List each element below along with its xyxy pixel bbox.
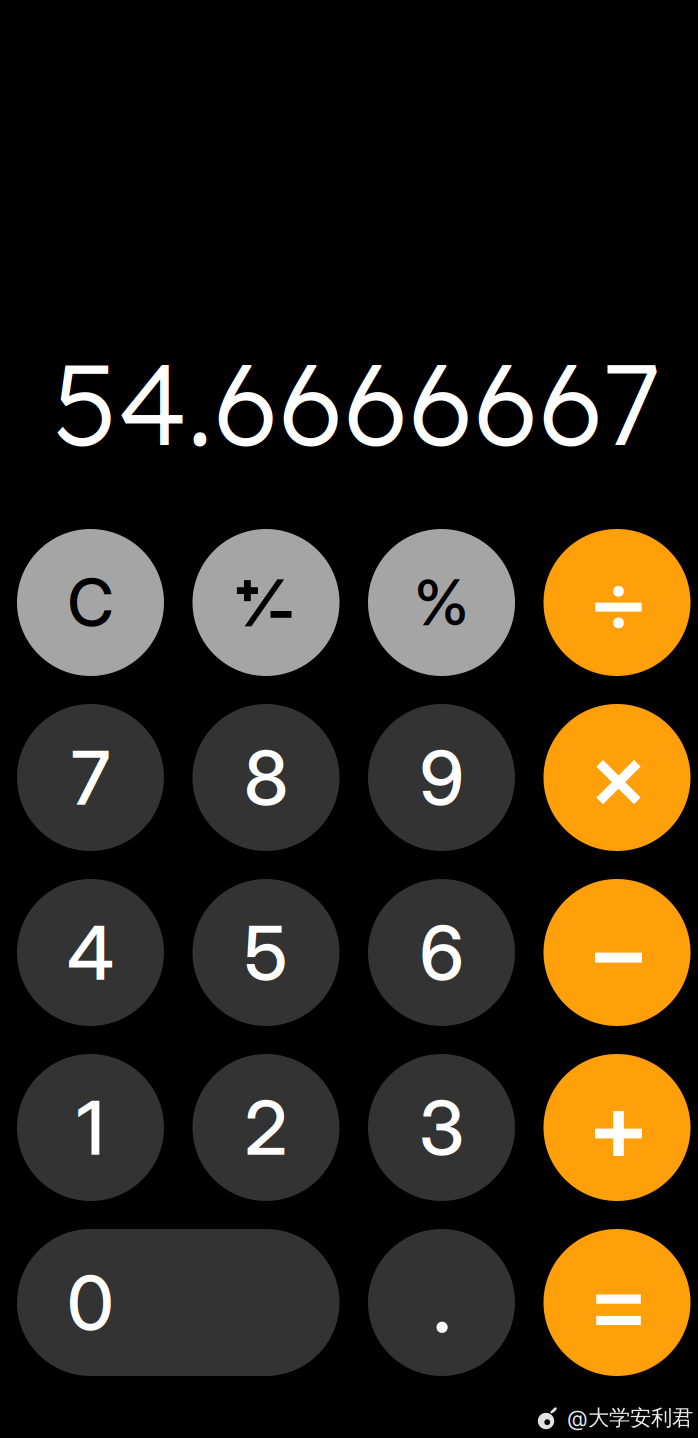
staticText: C: [67, 564, 113, 641]
button[interactable]: Add: [543, 1054, 690, 1201]
button[interactable]: C: [17, 529, 164, 676]
staticText: 54.6666667: [53, 332, 661, 474]
staticText: 0: [67, 1257, 114, 1348]
staticText: 8: [244, 732, 288, 823]
staticText: 7: [71, 732, 110, 823]
button[interactable]: 0: [17, 1229, 339, 1376]
button[interactable]: Toggle sign: [192, 529, 339, 676]
staticText: @大学安利君: [567, 1405, 693, 1431]
staticText: 3: [419, 1082, 464, 1173]
button[interactable]: 1: [17, 1054, 164, 1201]
button[interactable]: 3: [368, 1054, 515, 1201]
staticText: 4: [67, 907, 114, 998]
button[interactable]: Equals: [543, 1229, 690, 1376]
button[interactable]: 9: [368, 704, 515, 851]
button[interactable]: Subtract: [543, 879, 690, 1026]
staticText: 1: [76, 1082, 104, 1173]
button[interactable]: 7: [17, 704, 164, 851]
button[interactable]: Multiply: [543, 704, 690, 851]
staticText: 9: [419, 732, 463, 823]
button[interactable]: 8: [192, 704, 339, 851]
button[interactable]: Divide: [543, 529, 690, 676]
staticText: 2: [244, 1082, 287, 1173]
staticText: 6: [419, 907, 463, 998]
staticText: 5: [244, 907, 288, 998]
staticText: %: [414, 565, 469, 640]
button[interactable]: %: [368, 529, 515, 676]
button[interactable]: 4: [17, 879, 164, 1026]
button[interactable]: Decimal point: [368, 1229, 515, 1376]
button[interactable]: 6: [368, 879, 515, 1026]
button[interactable]: 5: [192, 879, 339, 1026]
button[interactable]: 2: [192, 1054, 339, 1201]
